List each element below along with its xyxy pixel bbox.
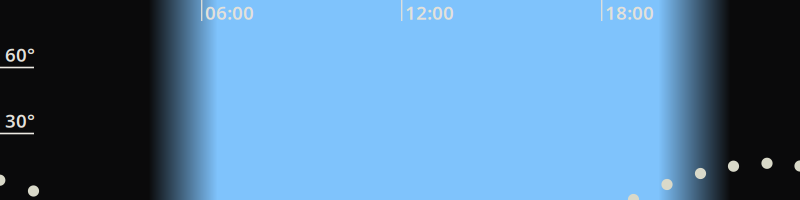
- staticText: 06:00: [205, 0, 254, 25]
- staticText: 60°: [5, 42, 35, 67]
- staticText: 30°: [5, 108, 35, 133]
- staticText: 12:00: [405, 0, 454, 25]
- staticText: 18:00: [605, 0, 654, 25]
- button[interactable]: Hourly temperature chart: [0, 0, 800, 200]
